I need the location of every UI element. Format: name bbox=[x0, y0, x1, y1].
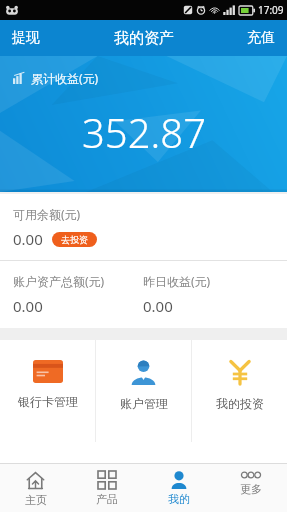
staticText: 可用余额(元) bbox=[13, 206, 81, 222]
staticText: 产品 bbox=[96, 492, 118, 506]
button[interactable]: 我的投资 bbox=[192, 340, 287, 442]
staticText: 我的 bbox=[168, 492, 190, 506]
staticText: 0.00 bbox=[13, 229, 43, 249]
staticText: 0.00 bbox=[13, 296, 43, 316]
staticText: 我的资产 bbox=[114, 29, 174, 48]
staticText: 我的投资 bbox=[216, 396, 264, 411]
staticText: 0.00 bbox=[143, 296, 173, 316]
other: 更多 bbox=[241, 471, 261, 479]
staticText: 账户资产总额(元) bbox=[13, 273, 105, 289]
button[interactable]: 去投资 bbox=[52, 232, 97, 247]
staticText: 主页 bbox=[25, 493, 47, 507]
staticText: 352.87 bbox=[82, 105, 206, 159]
button[interactable]: 我的 bbox=[143, 464, 215, 512]
other: 产品 bbox=[98, 471, 116, 489]
staticText: 充值 bbox=[247, 29, 275, 47]
button[interactable]: 银行卡管理 bbox=[0, 340, 95, 442]
button[interactable]: 主页 bbox=[0, 464, 71, 512]
staticText: 17:09 bbox=[258, 3, 284, 17]
button[interactable]: 充值 bbox=[235, 20, 287, 56]
staticText: 更多 bbox=[240, 482, 262, 496]
button[interactable]: 更多 bbox=[215, 464, 287, 512]
other: 我的 bbox=[170, 471, 188, 489]
other: 主页 bbox=[26, 471, 45, 490]
staticText: 银行卡管理 bbox=[18, 394, 78, 409]
staticText: 账户管理 bbox=[120, 396, 168, 411]
button[interactable]: 提现 bbox=[0, 20, 52, 56]
button[interactable]: 产品 bbox=[71, 464, 143, 512]
staticText: 提现 bbox=[12, 29, 40, 47]
staticText: 累计收益(元) bbox=[31, 70, 99, 86]
button[interactable]: 账户管理 bbox=[96, 340, 191, 442]
staticText: 去投资 bbox=[61, 234, 88, 245]
staticText: 昨日收益(元) bbox=[143, 273, 211, 289]
